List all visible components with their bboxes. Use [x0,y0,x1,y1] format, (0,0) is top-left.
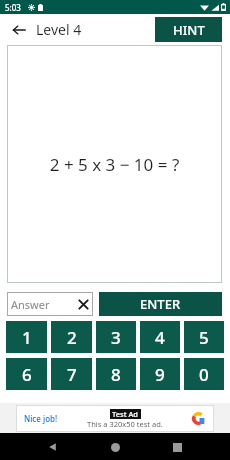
button[interactable]: Answer [7,292,93,316]
staticText: 4 [155,326,165,349]
button[interactable]: Home [104,436,126,458]
staticText: 3 [111,326,121,349]
staticText: 5 [199,326,209,349]
button[interactable]: Back [42,436,64,458]
staticText: HINT [173,21,205,39]
button[interactable]: Clear answer [73,294,93,314]
staticText: Test Ad [112,409,139,419]
staticText: 6 [22,363,32,386]
staticText: Nice job! [24,413,58,424]
button[interactable]: HINT [155,17,222,42]
other: Google Ads [192,412,205,425]
button[interactable]: 8 [96,358,136,390]
staticText: Level 4 [36,20,82,39]
staticText: 7 [67,363,77,386]
button[interactable]: ENTER [99,292,222,316]
staticText: 1 [22,326,32,349]
button[interactable]: Recent apps [166,436,188,458]
button[interactable]: 5 [184,321,224,353]
button[interactable]: 3 [96,321,136,353]
staticText: 2 + 5 x 3 − 10 = ? [7,153,222,176]
staticText: This a 320x50 test ad. [87,419,163,429]
staticText: 0 [199,363,209,386]
staticText: 9 [155,363,165,386]
staticText: Answer [11,297,73,312]
staticText: 5:03 [5,2,21,13]
button[interactable]: 9 [140,358,180,390]
button[interactable]: 1 [6,321,47,353]
button[interactable]: 2 [51,321,92,353]
button[interactable]: 4 [140,321,180,353]
button[interactable]: 7 [51,358,92,390]
staticText: 8 [111,363,121,386]
staticText: ENTER [140,295,181,313]
button[interactable]: 6 [6,358,47,390]
button[interactable]: 0 [184,358,224,390]
staticText: 2 [67,326,77,349]
button[interactable]: Nice job! [16,405,214,432]
button[interactable]: Back [10,21,28,39]
